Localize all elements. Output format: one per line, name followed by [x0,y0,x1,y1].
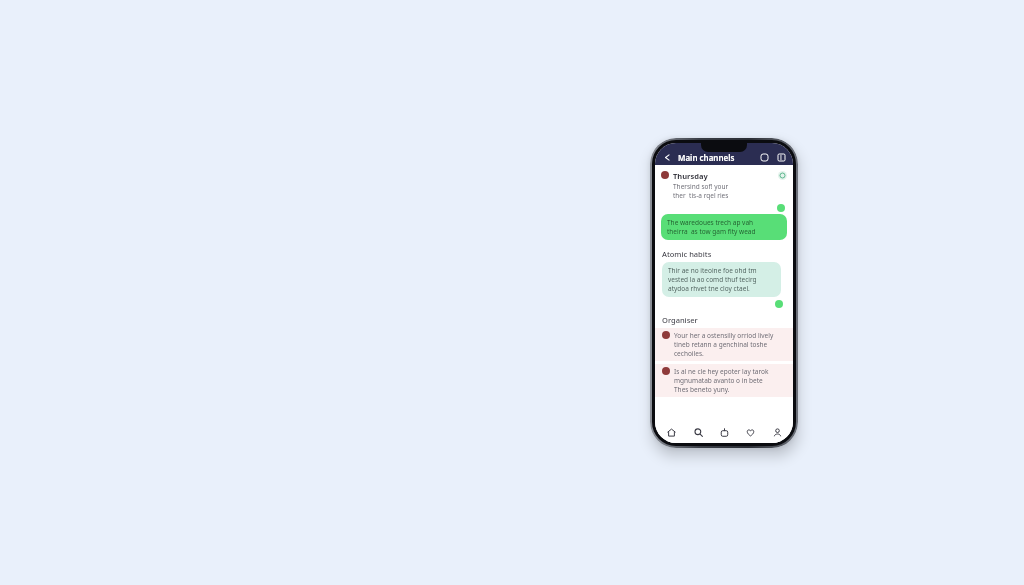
button[interactable]: Reaction [777,204,785,212]
staticText: Is al ne cle hey epoter lay tarok [674,367,769,376]
staticText: ther tis-a rqel ries [673,191,729,200]
staticText: vested la ao comd thuf tecirg [668,275,757,284]
button[interactable]: Is al ne cle hey epoter lay tarok [655,364,793,397]
button[interactable]: Reaction [775,300,783,308]
staticText: tineb retann a genchinal toshe [674,340,768,349]
button[interactable]: Back [661,151,673,163]
button[interactable]: Bag [714,422,734,442]
button[interactable]: Your her a ostensilly orriod lively [655,328,793,361]
button[interactable]: Thursday [655,169,793,202]
button[interactable]: More options [775,151,787,163]
button[interactable]: Notifications [758,151,770,163]
staticText: cechoiles. [674,349,704,358]
staticText: mgnumatab avanto o in bete [674,376,763,385]
button[interactable]: The waredoues trech ap vah [661,214,787,240]
button[interactable]: Home [661,422,681,442]
staticText: atydoa rhvet tne cloy ctael. [668,284,750,293]
staticText: Main channels [678,152,735,163]
staticText: Thersind sof! your [673,182,729,191]
button[interactable]: Thir ae no iteoine foe ohd tm [662,262,781,297]
staticText: The waredoues trech ap vah [667,218,754,227]
button[interactable]: Search [688,422,708,442]
staticText: Thursday [673,171,708,181]
button[interactable]: Profile [767,422,787,442]
staticText: Organiser [662,315,698,325]
staticText: theirra as tow gam fity wead [667,227,756,236]
staticText: Your her a ostensilly orriod lively [674,331,774,340]
button[interactable]: Main channels [678,152,735,163]
staticText: Thes beneto yuny. [674,385,730,394]
button[interactable]: Favorites [740,422,760,442]
staticText: Atomic habits [662,249,712,259]
staticText: Thir ae no iteoine foe ohd tm [668,266,757,275]
button[interactable]: Info [778,171,787,180]
